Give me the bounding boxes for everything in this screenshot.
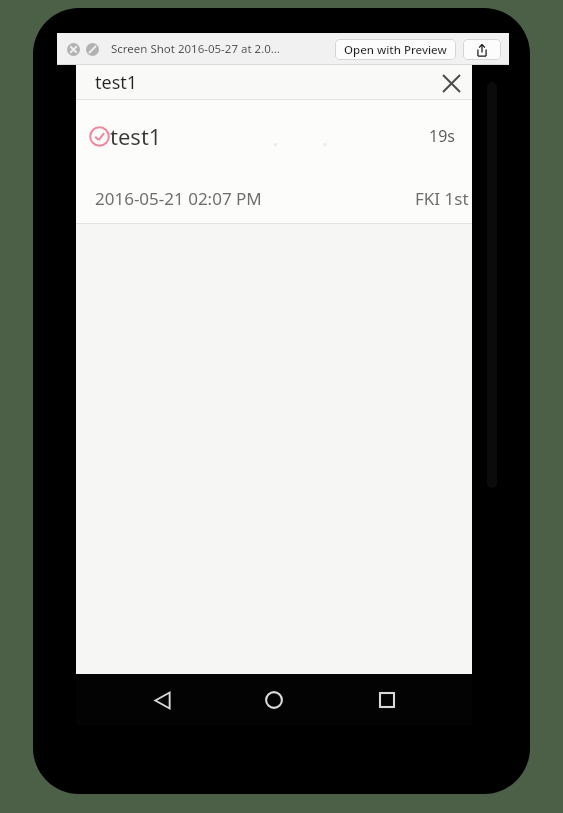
button[interactable]: 2016-05-21 02:07 PM	[76, 172, 472, 224]
staticText: 19s	[429, 125, 455, 147]
staticText: test1	[110, 121, 162, 151]
button[interactable]: Back	[135, 674, 189, 726]
button[interactable]: Share	[463, 39, 501, 60]
staticText: test1	[95, 70, 138, 95]
button[interactable]: Close	[434, 66, 468, 100]
staticText: 2016-05-21 02:07 PM	[95, 187, 262, 210]
button[interactable]: test1	[76, 100, 472, 172]
staticText: Screen Shot 2016-05-27 at 2.0…	[111, 41, 280, 57]
button[interactable]: Open with Preview	[335, 39, 456, 60]
staticText: FKI 1st	[415, 187, 469, 210]
button[interactable]: Close	[64, 40, 83, 59]
button[interactable]: Open full screen	[83, 40, 102, 59]
button[interactable]: Home	[247, 674, 301, 726]
button[interactable]: Recent apps	[360, 674, 414, 726]
staticText: Open with Preview	[344, 42, 447, 58]
